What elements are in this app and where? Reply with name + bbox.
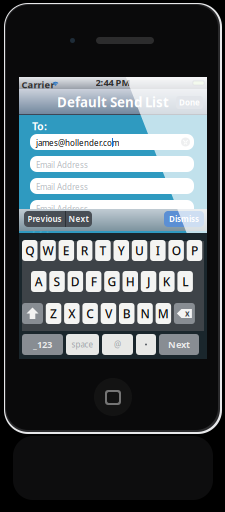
staticText: J <box>147 273 150 289</box>
button[interactable]: L <box>177 271 193 292</box>
staticText: Next <box>168 338 190 351</box>
staticText: V <box>105 305 112 321</box>
staticText: x <box>185 308 190 319</box>
button[interactable]: P <box>187 240 202 261</box>
staticText: S <box>53 273 60 289</box>
button[interactable]: Next <box>159 334 199 355</box>
button[interactable]: A <box>31 271 46 292</box>
staticText: Z <box>50 305 57 321</box>
button[interactable]: Y <box>113 240 129 261</box>
button[interactable]: james@hollender.com <box>30 134 194 150</box>
staticText: 2:44 PM <box>95 76 130 89</box>
button[interactable]: G <box>104 271 120 292</box>
button[interactable]: space <box>66 334 99 355</box>
staticText: Default Send List <box>57 93 169 111</box>
staticText: L <box>182 273 188 289</box>
button[interactable]: Dismiss <box>164 211 204 227</box>
button[interactable]: Previous <box>24 211 65 227</box>
button[interactable]: Period <box>136 334 156 355</box>
button[interactable]: C <box>82 303 98 324</box>
button[interactable]: Email Address <box>30 200 194 216</box>
staticText: N <box>141 305 150 321</box>
button[interactable]: Next <box>65 211 92 227</box>
staticText: H <box>126 273 135 289</box>
button[interactable]: M <box>156 303 171 324</box>
staticText: W <box>42 242 53 258</box>
button[interactable]: _123 <box>22 334 63 355</box>
button[interactable]: N <box>137 303 153 324</box>
button[interactable]: J <box>141 271 156 292</box>
button[interactable]: I <box>150 240 166 261</box>
button[interactable]: U <box>132 240 147 261</box>
staticText: @ <box>114 339 121 350</box>
staticText: Done <box>179 97 200 108</box>
staticText: Previous <box>27 214 61 224</box>
staticText: CC: <box>32 226 49 240</box>
button[interactable]: Email Address <box>30 156 194 172</box>
staticText: E <box>63 242 70 258</box>
button[interactable]: Delete <box>174 303 195 324</box>
staticText: A <box>35 273 43 289</box>
button[interactable]: O <box>168 240 184 261</box>
button[interactable]: S <box>49 271 65 292</box>
button[interactable]: F <box>86 271 101 292</box>
staticText: K <box>163 273 171 289</box>
staticText: O <box>172 242 181 258</box>
staticText: U <box>135 242 144 258</box>
staticText: T <box>99 242 106 258</box>
staticText: X <box>68 305 75 321</box>
staticText: B <box>123 305 131 321</box>
button[interactable]: Q <box>22 240 37 261</box>
button[interactable]: Shift <box>22 303 43 324</box>
button[interactable]: E <box>59 240 74 261</box>
staticText: I <box>156 242 160 258</box>
staticText: Email Address <box>36 203 88 214</box>
button[interactable]: X <box>64 303 80 324</box>
staticText: Q <box>25 242 34 258</box>
staticText: _123 <box>33 338 52 351</box>
button[interactable]: Z <box>46 303 61 324</box>
button[interactable]: H <box>122 271 138 292</box>
staticText: Next <box>68 214 88 224</box>
staticText: james@hollender.com <box>36 137 119 148</box>
button[interactable]: V <box>101 303 116 324</box>
button[interactable]: @ <box>102 334 133 355</box>
staticText: To: <box>32 119 47 133</box>
staticText: space <box>71 339 93 350</box>
button[interactable]: T <box>95 240 111 261</box>
staticText: P <box>191 242 198 258</box>
staticText: D <box>71 273 80 289</box>
staticText: C <box>86 305 94 321</box>
button[interactable]: Email Address <box>30 178 194 194</box>
button[interactable]: K <box>159 271 175 292</box>
staticText: M <box>158 305 169 321</box>
button[interactable]: R <box>77 240 92 261</box>
staticText: F <box>91 273 97 289</box>
staticText: Email Address <box>36 181 88 192</box>
staticText: Dismiss <box>169 214 199 224</box>
button[interactable]: B <box>119 303 134 324</box>
button[interactable]: W <box>40 240 56 261</box>
button[interactable]: D <box>68 271 83 292</box>
staticText: G <box>107 273 116 289</box>
staticText: R <box>81 242 89 258</box>
staticText: Y <box>118 242 125 258</box>
staticText: Carrier <box>21 78 54 91</box>
staticText: Email Address <box>36 159 88 170</box>
button[interactable]: Done <box>176 96 203 109</box>
